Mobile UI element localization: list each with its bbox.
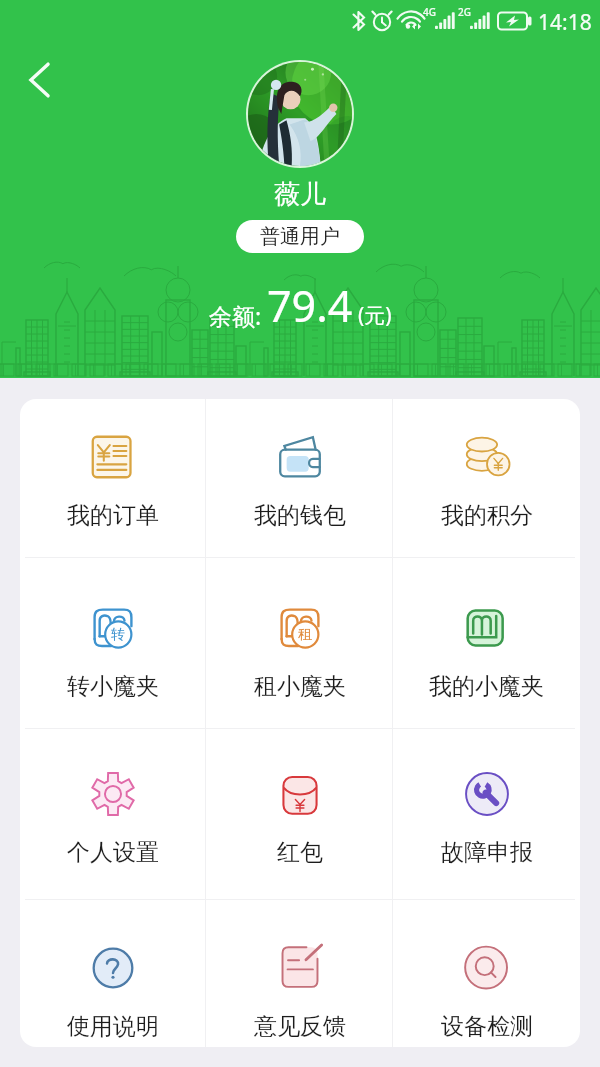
staticText: 转小魔夹 (67, 672, 159, 701)
button[interactable]: 红包 (206, 729, 393, 899)
staticText: 故障申报 (441, 838, 533, 867)
staticText: 使用说明 (67, 1012, 159, 1041)
staticText: 余额: (209, 300, 262, 331)
button[interactable]: 故障申报 (393, 729, 580, 899)
staticText: 4G (423, 5, 436, 19)
button[interactable]: 设备检测 (393, 900, 580, 1047)
button[interactable]: 普通用户 (236, 220, 364, 253)
staticText: 转 (111, 626, 125, 644)
staticText: 2G (458, 5, 471, 19)
staticText: 租 (298, 626, 312, 644)
staticText: 79.4 (267, 276, 353, 335)
staticText: 设备检测 (441, 1012, 533, 1041)
staticText: 我的订单 (67, 501, 159, 530)
button[interactable]: 我的订单 (20, 399, 206, 557)
button[interactable]: 使用说明 (20, 900, 206, 1047)
button[interactable]: 意见反馈 (206, 900, 393, 1047)
button[interactable]: 个人设置 (20, 729, 206, 899)
button[interactable]: 我的钱包 (206, 399, 393, 557)
staticText: 薇儿 (274, 178, 326, 211)
staticText: 红包 (277, 838, 323, 867)
staticText: 个人设置 (67, 838, 159, 867)
button[interactable]: Avatar (248, 62, 352, 166)
staticText: 意见反馈 (254, 1012, 346, 1041)
button[interactable]: 我的积分 (393, 399, 580, 557)
staticText: 14:18 (538, 8, 592, 37)
staticText: 租小魔夹 (254, 672, 346, 701)
staticText: 我的小魔夹 (429, 672, 544, 701)
button[interactable]: 我的小魔夹 (393, 558, 580, 728)
staticText: 我的积分 (441, 501, 533, 530)
staticText: 普通用户 (260, 224, 340, 249)
button[interactable]: 转 (20, 558, 206, 728)
staticText: 我的钱包 (254, 501, 346, 530)
button[interactable]: Back (14, 54, 66, 106)
staticText: (元) (358, 301, 392, 330)
button[interactable]: 租 (206, 558, 393, 728)
